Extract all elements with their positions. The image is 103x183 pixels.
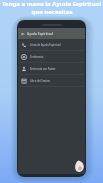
staticText: Entrevista con Pastor xyxy=(30,67,56,71)
staticText: que necesitas xyxy=(31,8,73,16)
button[interactable]: Linea de Ayuda Espiritual xyxy=(18,39,85,50)
button[interactable]: Ayuda Espiritual xyxy=(18,28,85,39)
staticText: Testimonio xyxy=(30,55,44,59)
button[interactable]: Libro de Oracion xyxy=(18,75,85,86)
staticText: Libro de Oracion xyxy=(30,79,51,83)
button[interactable]: Testimonio xyxy=(18,51,85,62)
staticText: Linea de Ayuda Espiritual xyxy=(30,43,61,47)
button[interactable]: Entrevista con Pastor xyxy=(18,63,85,74)
staticText: Ayuda Espiritual xyxy=(27,31,53,36)
staticText: Tenga a mano la Ayuda Espiritual xyxy=(2,0,101,8)
